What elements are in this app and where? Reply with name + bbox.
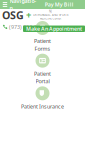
staticText: (973) 364-7700 bbox=[9, 23, 46, 31]
button[interactable]: Patient bbox=[34, 21, 51, 52]
staticText: + bbox=[26, 9, 31, 21]
staticText: Patient bbox=[34, 70, 51, 77]
staticText: Make An Appointment bbox=[26, 25, 82, 32]
staticText: MEDICINE CENTER bbox=[39, 17, 61, 20]
button[interactable]: Pay My Bill bbox=[45, 1, 77, 8]
staticText: Portal bbox=[35, 78, 49, 85]
staticText: Navigation bbox=[9, 0, 36, 12]
staticText: Pay My Bill bbox=[45, 1, 74, 8]
button[interactable]: (973) 364-7700 bbox=[0, 23, 46, 31]
staticText: ORTHOPAEDIC AND SPORTS bbox=[33, 13, 68, 17]
button[interactable]: Patient bbox=[34, 54, 51, 85]
staticText: OSG bbox=[2, 8, 24, 22]
staticText: NJ bbox=[49, 10, 52, 13]
staticText: Forms bbox=[34, 45, 50, 52]
button[interactable]: Patient Insurance bbox=[21, 86, 64, 110]
staticText: Patient bbox=[34, 37, 51, 45]
button[interactable]: Make An Appointment bbox=[23, 25, 85, 32]
staticText: Patient Insurance bbox=[21, 103, 64, 110]
button[interactable]: Navigation menu bbox=[0, 0, 36, 12]
